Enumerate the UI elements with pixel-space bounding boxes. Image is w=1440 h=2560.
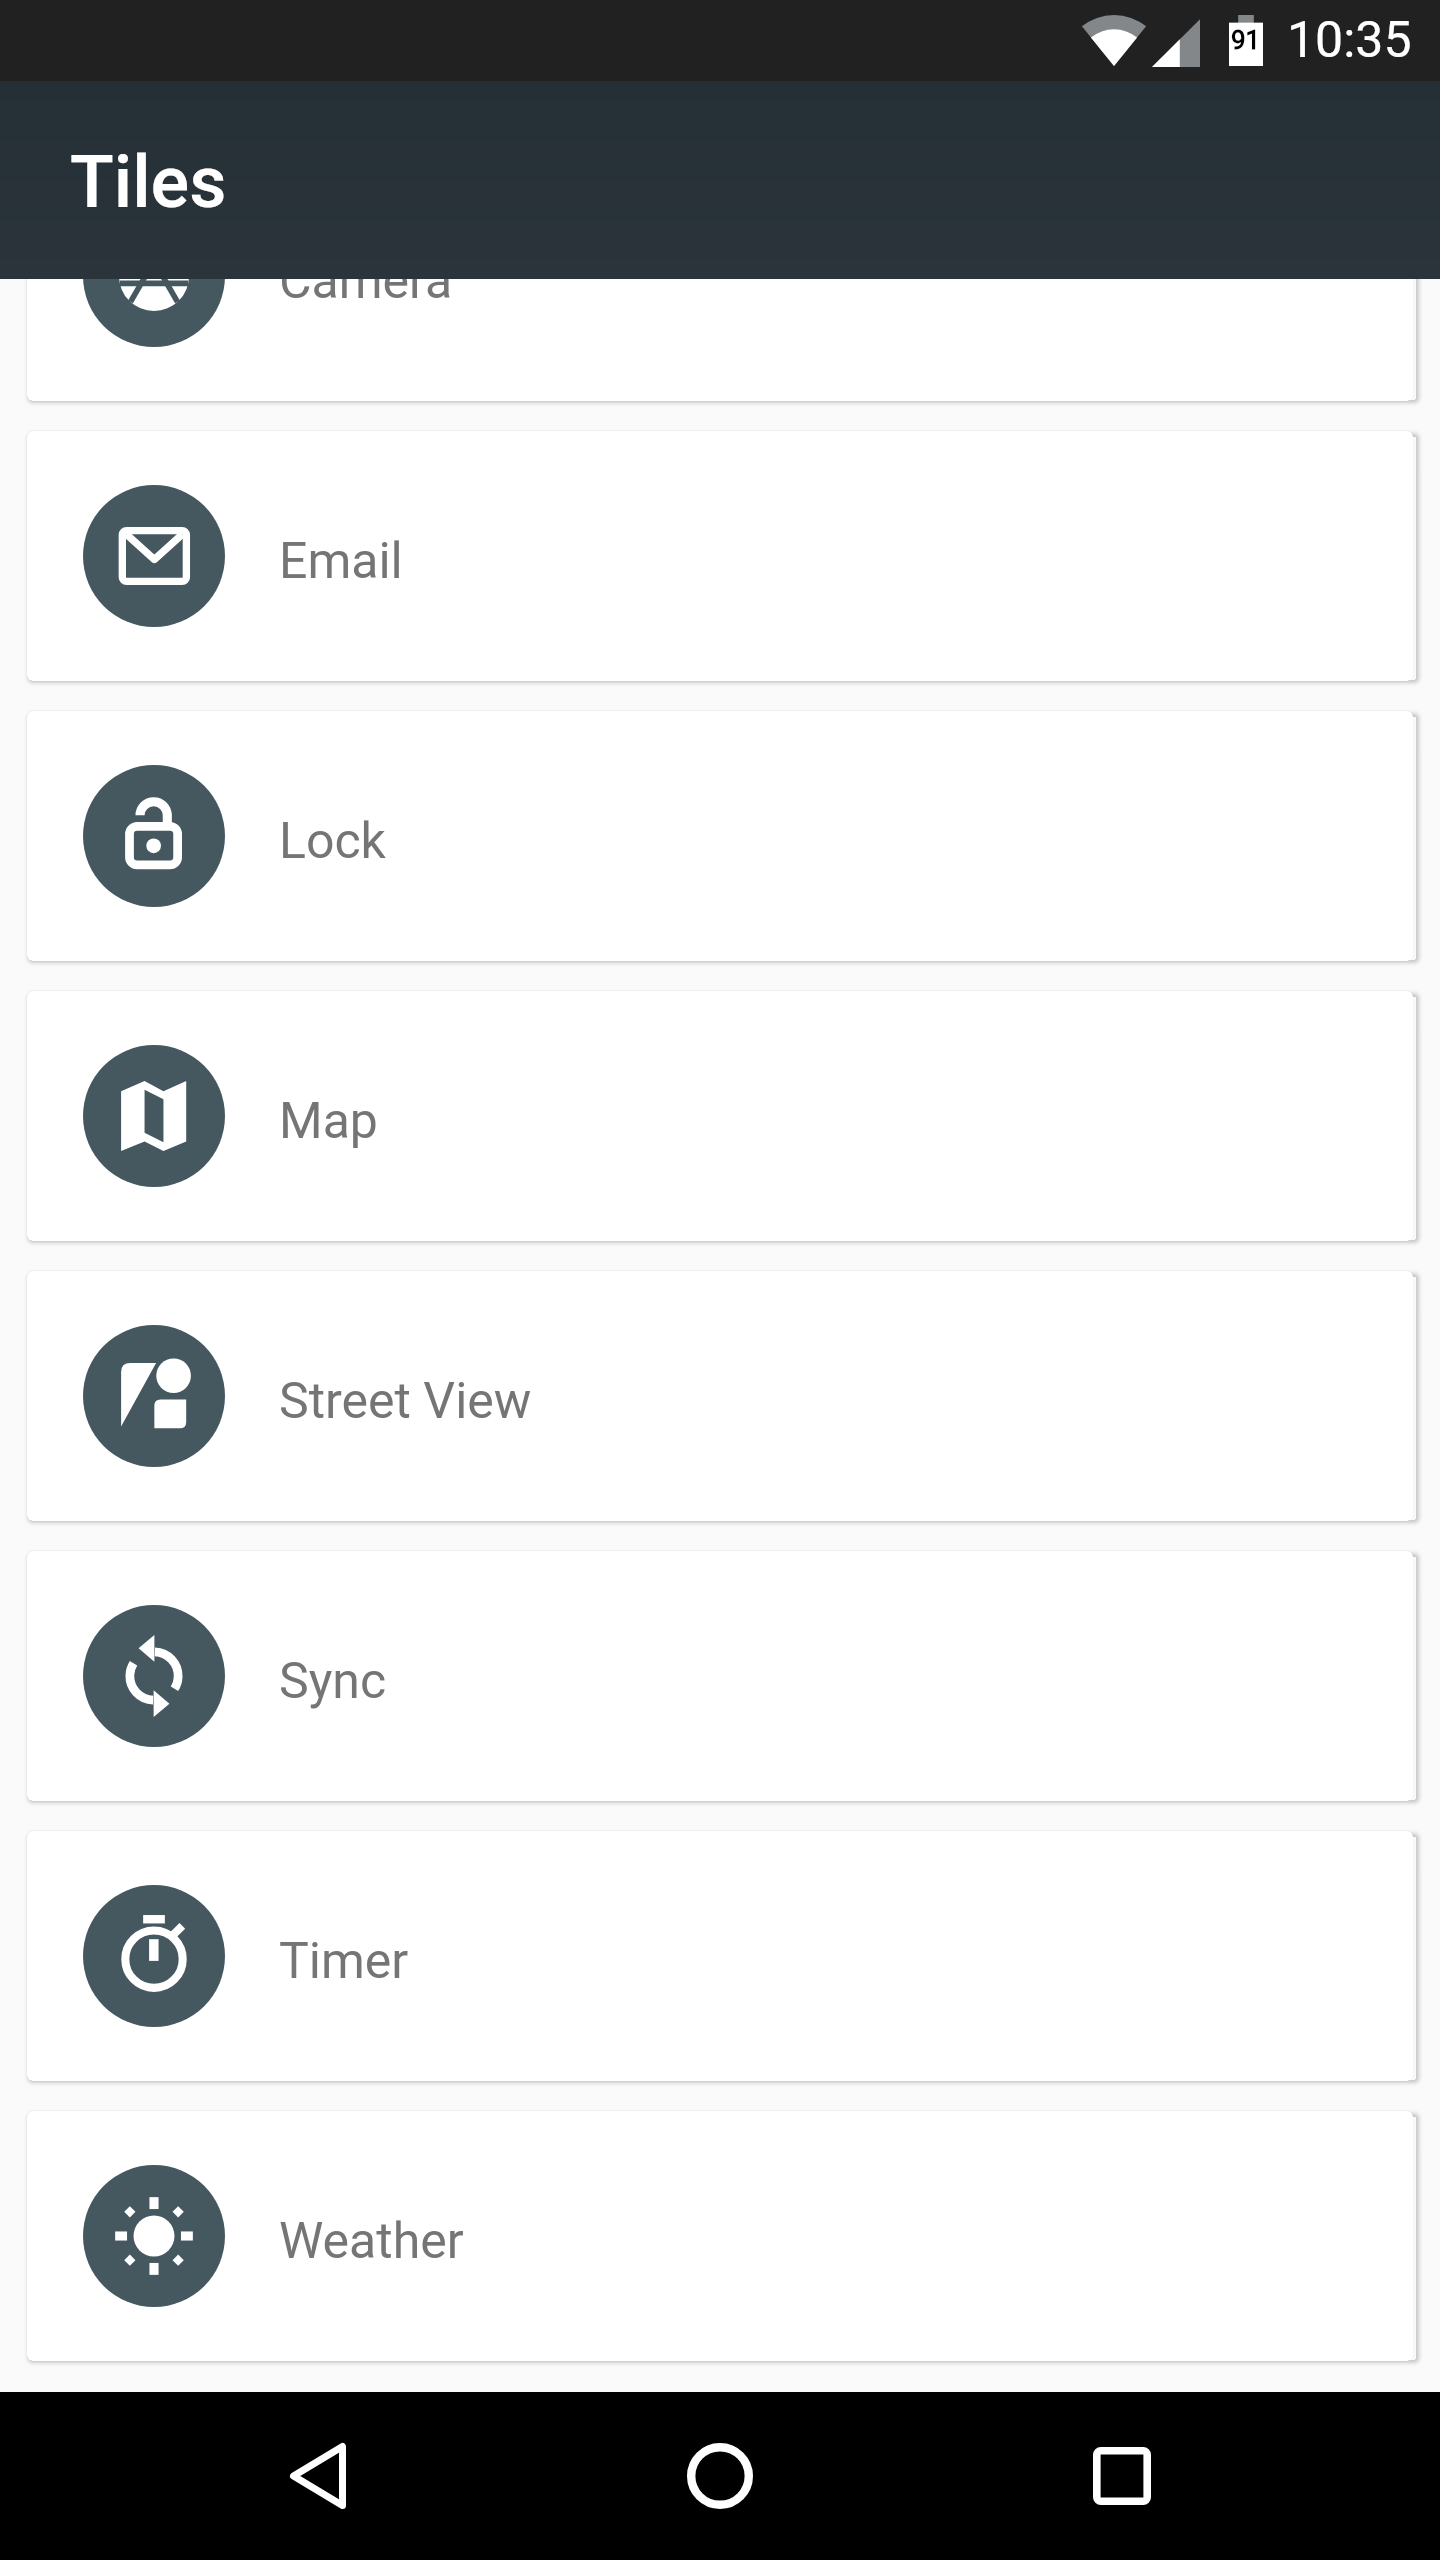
staticText: Map: [279, 1092, 378, 1151]
staticText: Timer: [279, 1932, 409, 1991]
staticText: Email: [279, 532, 403, 591]
button[interactable]: Lock: [27, 711, 1413, 961]
staticText: Sync: [279, 1652, 387, 1711]
button[interactable]: Street View: [27, 1271, 1413, 1521]
button[interactable]: Weather: [27, 2111, 1413, 2361]
staticText: Street View: [279, 1372, 532, 1431]
staticText: 10:35: [1287, 11, 1412, 70]
staticText: Lock: [279, 812, 386, 871]
button[interactable]: Home: [636, 2392, 804, 2560]
button[interactable]: Email: [27, 431, 1413, 681]
button[interactable]: Recent apps: [1038, 2392, 1206, 2560]
button[interactable]: Sync: [27, 1551, 1413, 1801]
button[interactable]: Map: [27, 991, 1413, 1241]
staticText: 91: [1231, 25, 1261, 55]
button[interactable]: Back: [234, 2392, 402, 2560]
button[interactable]: Camera: [27, 151, 1413, 401]
staticText: Camera: [279, 252, 453, 311]
staticText: Weather: [279, 2212, 464, 2271]
staticText: Tiles: [70, 140, 227, 224]
button[interactable]: Timer: [27, 1831, 1413, 2081]
